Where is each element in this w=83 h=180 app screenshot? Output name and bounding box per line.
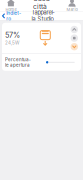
staticText: Casa città — [33, 0, 50, 11]
staticText: Percentuale apertura — [5, 57, 31, 68]
staticText: Online — [34, 11, 48, 17]
button[interactable]: Mario — [63, 0, 81, 12]
staticText: 57% — [5, 31, 20, 40]
button[interactable]: Stop — [71, 34, 78, 42]
button[interactable]: Close — [71, 43, 78, 50]
button[interactable]: Home — [2, 0, 20, 12]
staticText: Tapparella Studio — [32, 9, 55, 23]
staticText: Indietro — [6, 10, 21, 22]
staticText: Home — [5, 7, 16, 12]
staticText: 24,5W — [5, 40, 19, 45]
button[interactable]: Indietro — [0, 8, 23, 24]
button[interactable]: Open — [71, 26, 78, 33]
staticText: Mario — [66, 7, 77, 12]
